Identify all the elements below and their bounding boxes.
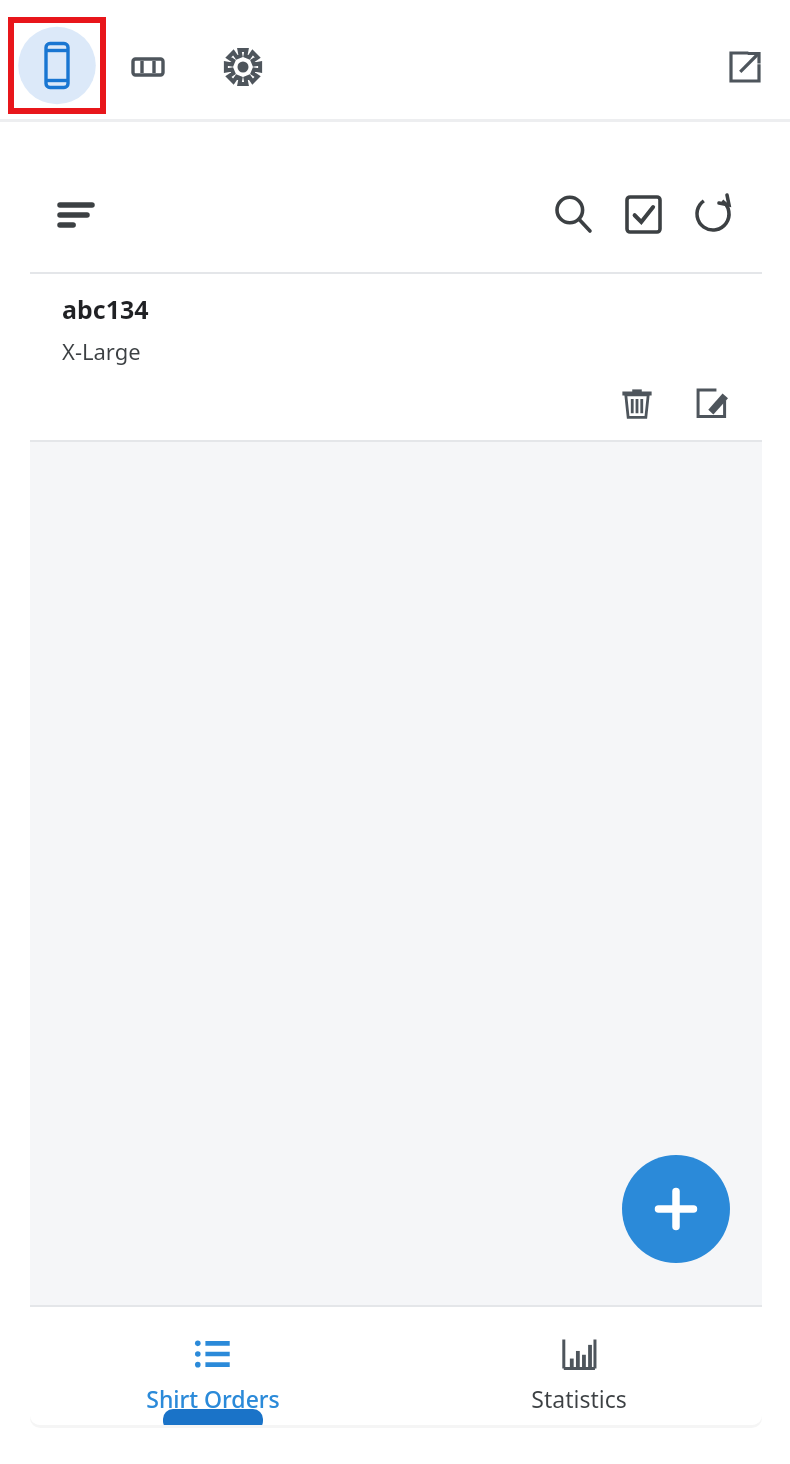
button[interactable]: Phone preview [8,17,106,114]
button[interactable]: Sort [44,182,108,246]
button[interactable]: Edit [680,372,742,434]
button[interactable]: Tablet preview [119,38,177,96]
button[interactable]: Delete [606,372,668,434]
button[interactable]: Search [538,179,608,249]
button[interactable]: Statistics [396,1307,762,1425]
button[interactable]: Select all [608,179,678,249]
button[interactable]: abc134 [30,274,762,440]
button[interactable]: Open in new window [716,38,774,96]
staticText: abc134 [62,292,149,326]
button[interactable]: Add order [622,1155,730,1263]
button[interactable]: Refresh [678,179,748,249]
button[interactable]: Shirt Orders [30,1307,396,1425]
staticText: X-Large [62,336,141,366]
staticText: Statistics [531,1383,627,1414]
button[interactable]: Settings [214,38,272,96]
staticText: Shirt Orders [146,1383,280,1414]
